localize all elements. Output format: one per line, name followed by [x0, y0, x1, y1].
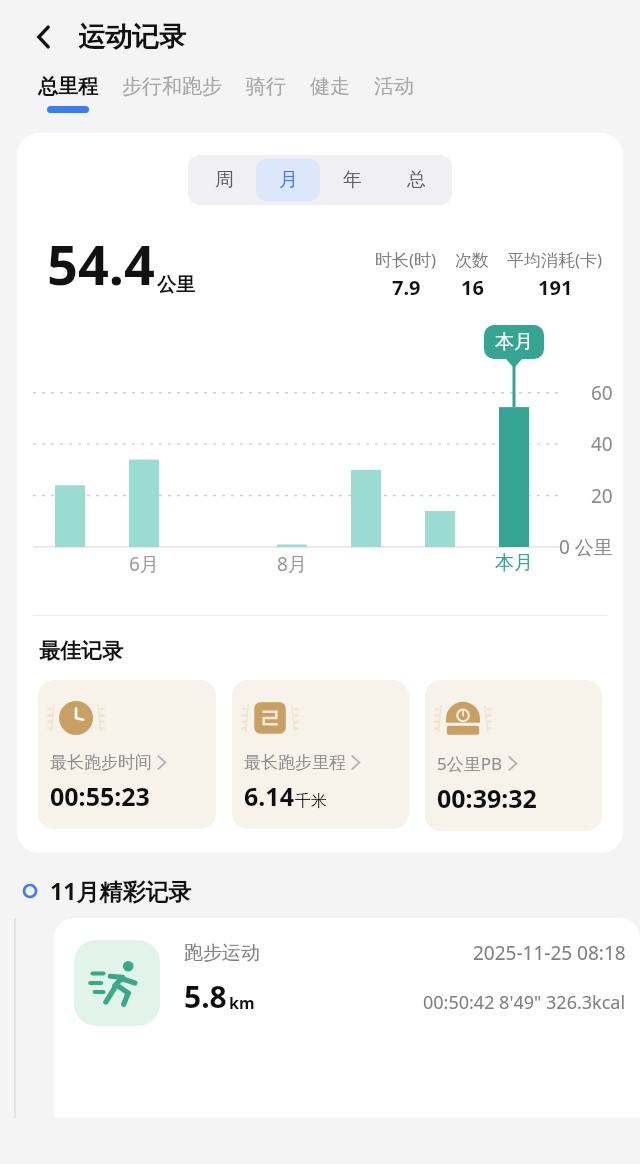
button[interactable]: 最长跑步时间 — [38, 680, 216, 829]
staticText: 40 — [591, 431, 613, 457]
staticText: 60 — [591, 380, 613, 406]
staticText: 骑行 — [246, 74, 286, 99]
staticText: 20 — [591, 483, 613, 509]
staticText: 最长跑步里程 — [244, 752, 346, 773]
staticText: 次数 — [455, 250, 489, 271]
button[interactable]: 5公里PB — [425, 680, 602, 831]
staticText: 7.9 — [392, 274, 421, 301]
staticText: 周 — [215, 168, 234, 192]
staticText: 5.8 — [184, 976, 227, 1017]
button[interactable]: 总 — [384, 159, 448, 201]
staticText: 6月 — [129, 551, 159, 577]
staticText: 6.14 — [244, 779, 294, 813]
staticText: 月 — [279, 168, 298, 192]
staticText: 公里 — [157, 273, 195, 297]
button[interactable]: 活动 — [364, 68, 424, 119]
button[interactable]: 周 — [192, 159, 256, 201]
button[interactable]: 总里程 — [28, 68, 108, 119]
button[interactable]: 最长跑步里程 — [232, 680, 409, 829]
staticText: 平均消耗(卡) — [507, 248, 603, 271]
staticText: 最佳记录 — [39, 638, 123, 664]
staticText: 步行和跑步 — [122, 74, 222, 99]
staticText: 健走 — [310, 74, 350, 99]
staticText: 跑步运动 — [184, 941, 260, 965]
staticText: 2025-11-25 08:18 — [473, 940, 626, 966]
staticText: 191 — [538, 274, 573, 301]
staticText: 活动 — [374, 74, 414, 99]
staticText: 时长(时) — [375, 248, 437, 271]
staticText: 总 — [407, 168, 426, 192]
staticText: 00:55:23 — [50, 779, 150, 813]
staticText: 8月 — [277, 551, 307, 577]
staticText: 11月精彩记录 — [50, 875, 192, 906]
button[interactable]: 健走 — [300, 68, 360, 119]
staticText: 运动记录 — [78, 20, 186, 54]
staticText: 54.4 — [47, 227, 155, 301]
staticText: 最长跑步时间 — [50, 752, 152, 773]
staticText: 年 — [343, 168, 362, 192]
staticText: 0 公里 — [559, 534, 613, 560]
button[interactable]: 年 — [320, 159, 384, 201]
staticText: 5公里PB — [437, 752, 503, 775]
staticText: 00:39:32 — [437, 781, 537, 815]
button[interactable]: 跑步运动 — [54, 918, 640, 1118]
button[interactable]: Back — [22, 15, 66, 59]
button[interactable]: 步行和跑步 — [112, 68, 232, 119]
staticText: 00:50:42 8'49" 326.3kcal — [423, 990, 626, 1015]
staticText: 千米 — [295, 791, 327, 811]
staticText: 总里程 — [38, 74, 98, 99]
staticText: km — [229, 992, 255, 1014]
staticText: 本月 — [495, 551, 533, 575]
button[interactable]: 骑行 — [236, 68, 296, 119]
button[interactable]: 月 — [256, 159, 320, 201]
staticText: 16 — [461, 274, 484, 301]
staticText: 本月 — [495, 330, 533, 354]
